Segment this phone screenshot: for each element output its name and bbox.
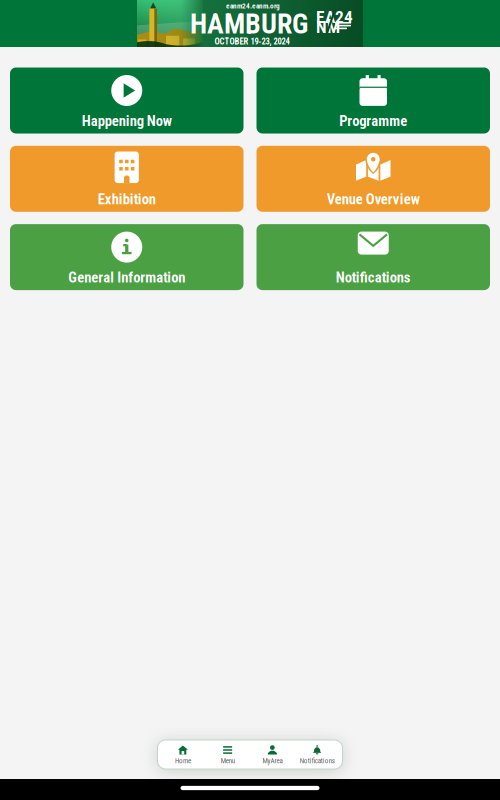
staticText: Home xyxy=(175,757,191,765)
staticText: EA xyxy=(316,7,335,27)
staticText: Venue Overview xyxy=(327,191,420,208)
button[interactable]: Notifications xyxy=(256,224,490,290)
button[interactable]: MyArea xyxy=(250,740,295,769)
button[interactable]: Menu xyxy=(205,740,250,769)
staticText: Exhibition xyxy=(98,191,156,208)
button[interactable]: Programme xyxy=(256,67,490,133)
staticText: Programme xyxy=(339,112,407,130)
staticText: Notifications xyxy=(336,269,411,286)
staticText: Happening Now xyxy=(82,112,172,130)
staticText: 24 xyxy=(335,7,353,27)
button[interactable]: Home xyxy=(160,740,205,769)
staticText: Notifications xyxy=(300,757,335,765)
button[interactable]: Notifications xyxy=(295,740,340,769)
staticText: NM xyxy=(316,17,340,37)
button[interactable]: General Information xyxy=(10,224,243,290)
button[interactable]: Exhibition xyxy=(10,146,243,212)
button[interactable]: Happening Now xyxy=(10,67,243,133)
staticText: MyArea xyxy=(262,757,282,765)
button[interactable]: Venue Overview xyxy=(256,146,490,212)
staticText: eanm24.eanm.org xyxy=(226,2,280,10)
staticText: HAMBURG xyxy=(190,8,308,40)
staticText: Menu xyxy=(221,757,235,765)
staticText: General Information xyxy=(68,269,185,286)
staticText: OCTOBER 19-23, 2024 xyxy=(214,36,289,47)
